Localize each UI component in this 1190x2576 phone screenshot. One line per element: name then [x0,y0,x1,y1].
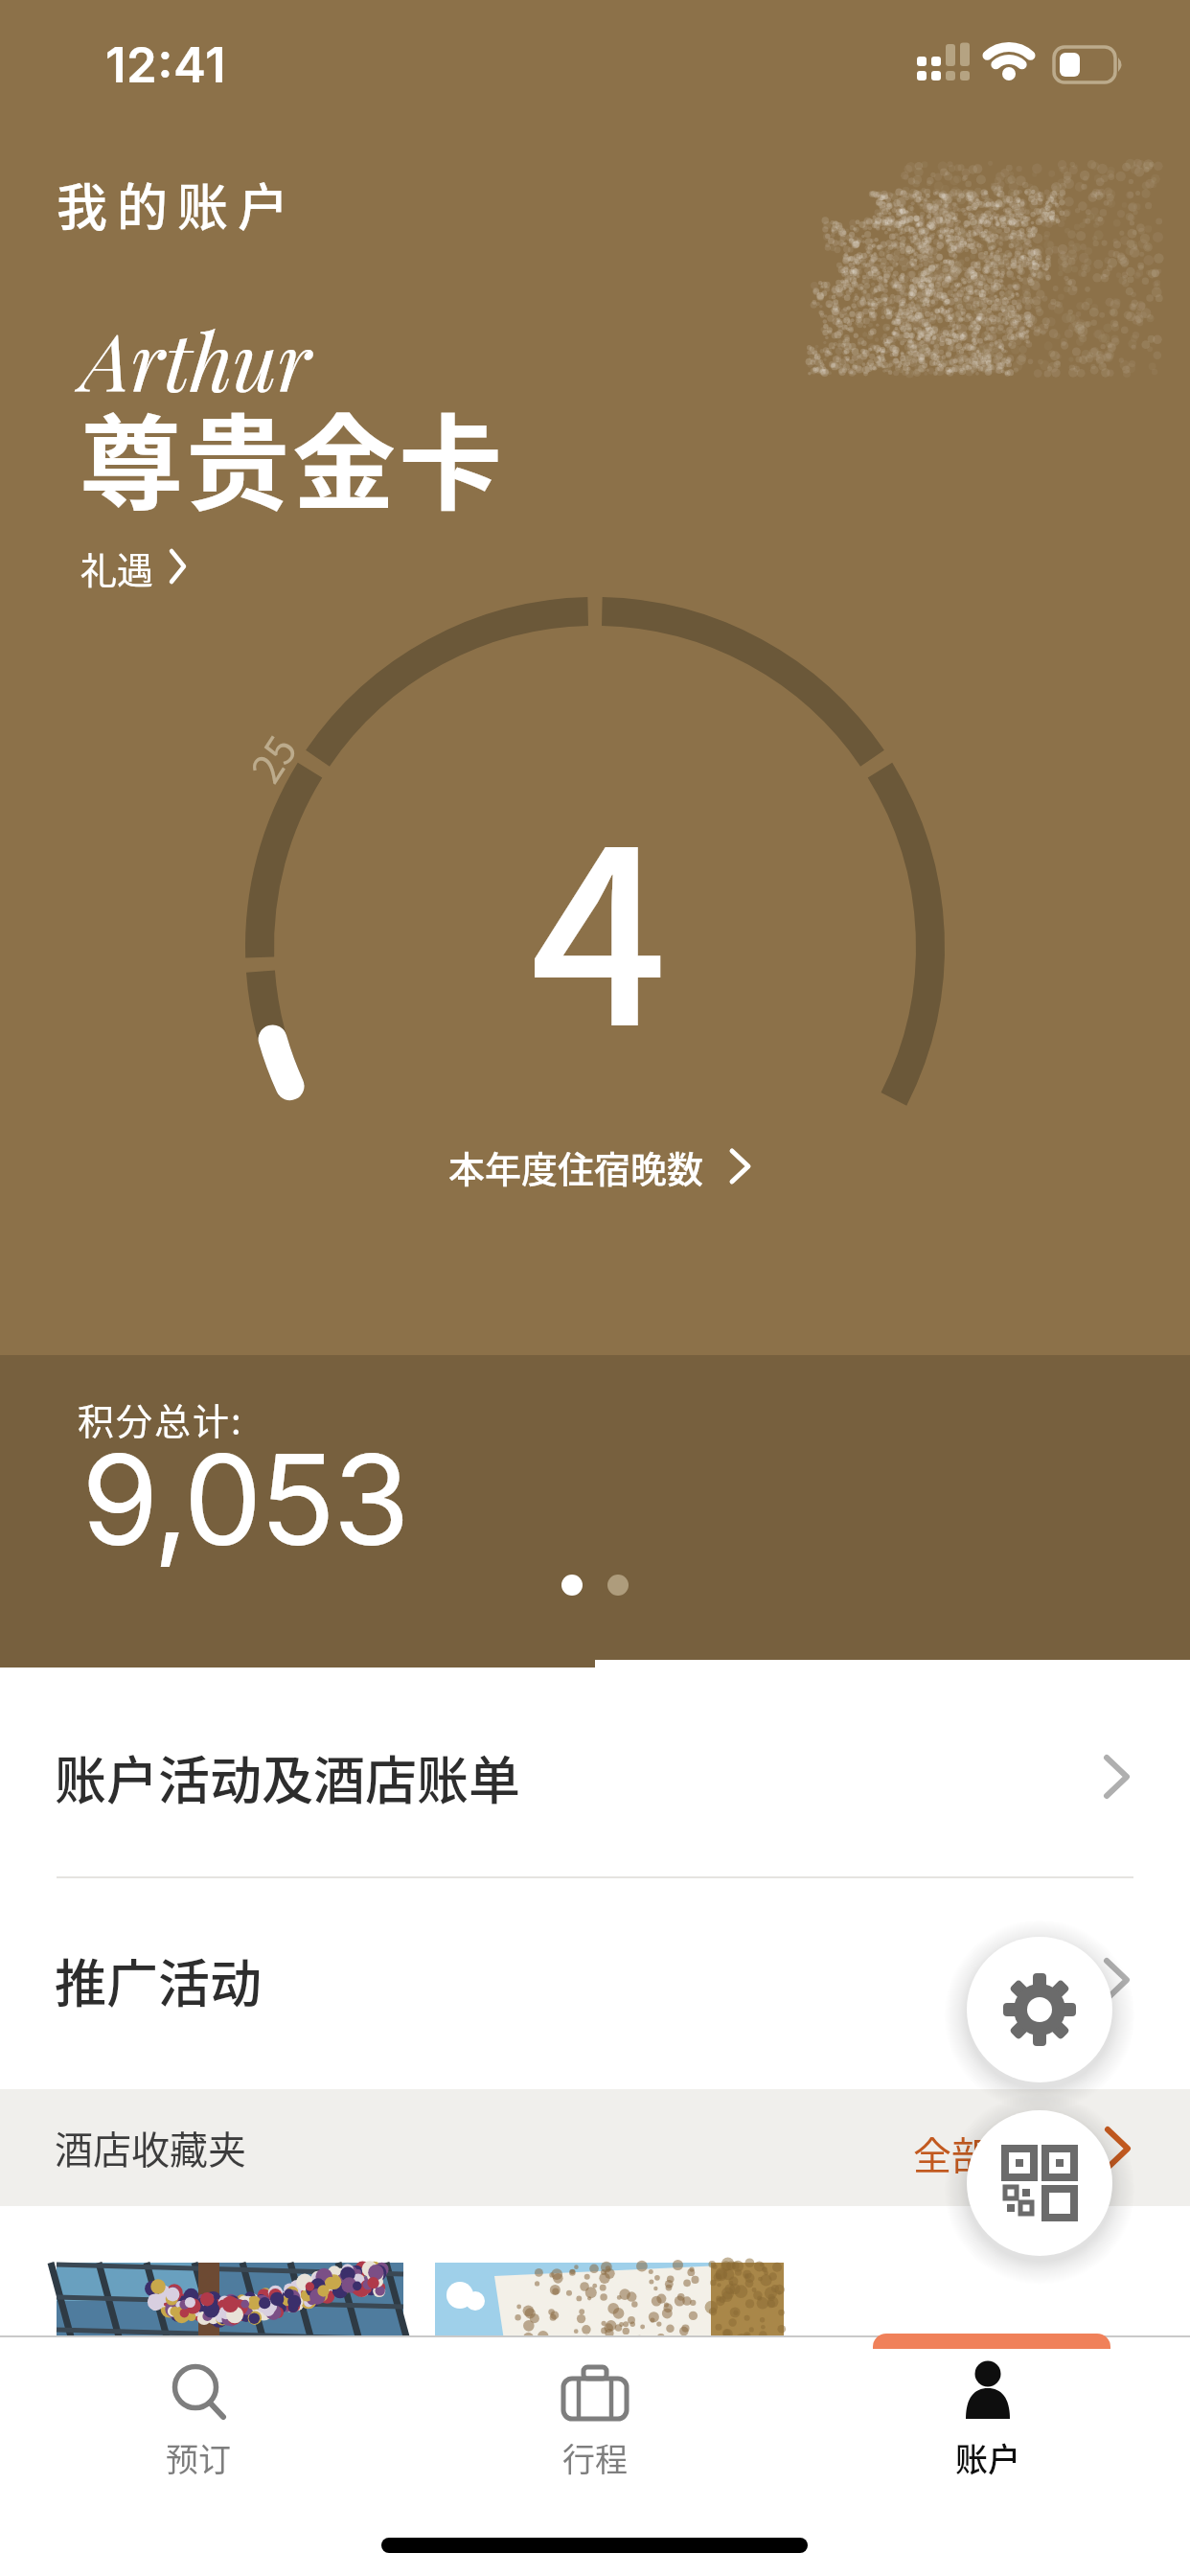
button[interactable] [496,2348,694,2511]
staticText: 9,053 [81,1424,408,1575]
staticText: 12:41 [105,35,227,95]
button[interactable]: 账户活动及酒店账单 [0,1700,1190,1853]
button[interactable] [873,2334,1110,2349]
button[interactable]: 推广活动 [0,1903,1190,2057]
staticText: 账户 [955,2434,1020,2481]
staticText: 4 [530,746,668,1095]
staticText: 预订 [166,2434,231,2481]
staticText: 行程 [562,2434,628,2481]
button[interactable] [967,1937,1112,2082]
button[interactable] [889,2348,1087,2511]
staticText: 账户活动及酒店账单 [55,1739,520,1814]
staticText: 我的账户 [57,168,298,241]
staticText: 推广活动 [55,1943,262,2017]
button[interactable] [422,1131,786,1207]
staticText: 本年度住宿晚数 [448,1140,704,1193]
staticText: 尊贵金卡 [80,381,506,531]
staticText: Arthur [81,307,311,411]
button[interactable] [435,2263,784,2340]
button[interactable] [67,527,201,604]
button[interactable] [967,2110,1112,2256]
staticText: 25 [235,723,308,792]
staticText: 酒店收藏夹 [55,2120,246,2175]
button[interactable] [100,2348,297,2511]
staticText: 全部 [913,2126,990,2181]
button[interactable]: 酒店收藏夹 [0,2089,1190,2206]
staticText: 礼遇 [80,541,154,594]
staticText: 积分总计: [78,1392,243,1445]
button[interactable] [57,2263,403,2340]
